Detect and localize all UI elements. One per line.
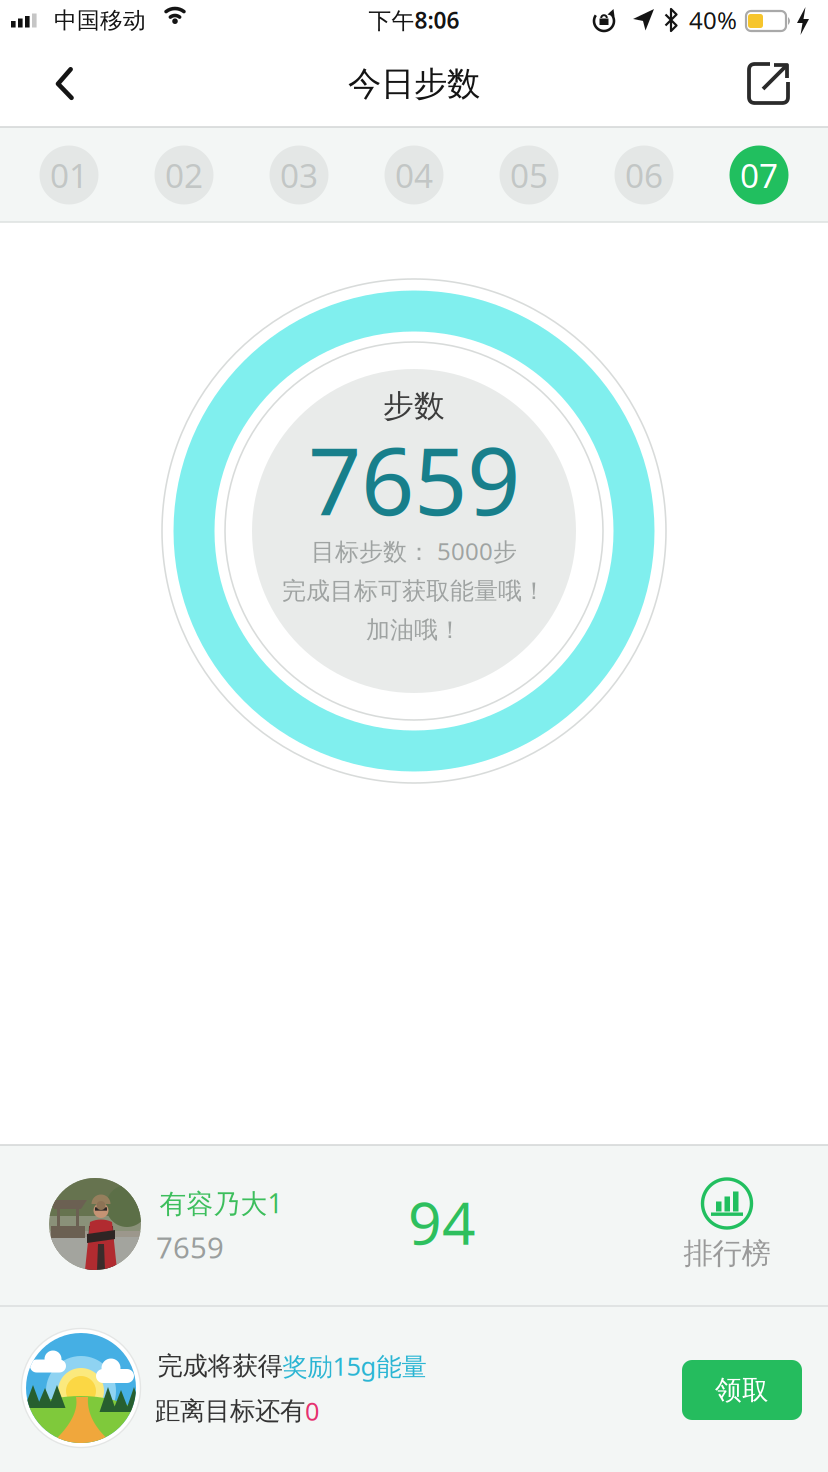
staticText: 7659 [308, 417, 520, 541]
staticText: 奖励15g能量 [282, 1349, 426, 1383]
button[interactable]: 06 [614, 145, 673, 204]
button[interactable]: 07 [729, 145, 788, 204]
staticText: 03 [280, 153, 318, 197]
button[interactable]: 02 [154, 145, 213, 204]
button[interactable]: Back [24, 44, 104, 124]
staticText: 94 [408, 1183, 476, 1261]
staticText: 完成目标可获取能量哦！ [282, 576, 546, 606]
staticText: 步数 [383, 387, 445, 425]
staticText: 04 [395, 153, 433, 197]
staticText: 排行榜 [683, 1235, 770, 1271]
staticText: 今日步数 [348, 63, 480, 104]
staticText: 下午8:06 [368, 5, 459, 35]
staticText: 有容乃大1 [159, 1185, 282, 1221]
staticText: 7659 [156, 1227, 224, 1266]
staticText: 01 [50, 153, 88, 197]
staticText: 中国移动 [54, 7, 146, 34]
staticText: 06 [625, 153, 663, 197]
button[interactable]: 排行榜 [683, 1176, 770, 1271]
button[interactable]: 05 [499, 145, 558, 204]
button[interactable]: 03 [269, 145, 328, 204]
staticText: 距离目标还有 [155, 1395, 305, 1426]
staticText: 加油哦！ [366, 615, 462, 645]
button[interactable]: 领取 [682, 1360, 802, 1420]
staticText: 07 [740, 153, 778, 197]
staticText: 完成将获得 [157, 1350, 282, 1381]
button[interactable]: 04 [384, 145, 443, 204]
staticText: 40% [689, 4, 737, 36]
button[interactable]: 01 [39, 145, 98, 204]
button[interactable]: Share [728, 44, 808, 124]
staticText: 0 [305, 1394, 319, 1428]
staticText: 领取 [715, 1374, 769, 1406]
staticText: 05 [510, 153, 548, 197]
staticText: 目标步数： 5000步 [311, 535, 517, 567]
staticText: 02 [165, 153, 203, 197]
